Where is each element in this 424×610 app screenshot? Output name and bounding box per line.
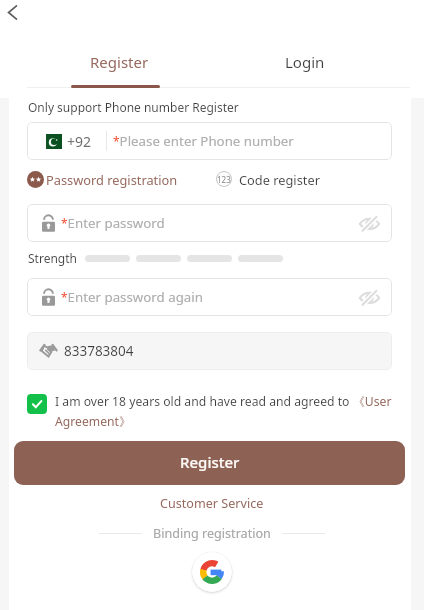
button[interactable]: Back [0, 0, 24, 25]
staticText: +92 [67, 132, 92, 151]
staticText: Binding registration [153, 525, 271, 542]
button[interactable]: Agree to user agreement [27, 394, 47, 414]
staticText: Login [285, 52, 325, 72]
staticText: Strength [28, 250, 77, 266]
button[interactable]: Show password [357, 211, 381, 235]
button[interactable]: I am over 18 years old and have read and… [55, 393, 395, 430]
button[interactable]: +92 [27, 122, 392, 160]
staticText: Register [180, 452, 240, 472]
button[interactable]: Register [14, 441, 405, 485]
button[interactable]: *Enter password [27, 204, 392, 242]
staticText: Code register [239, 171, 320, 188]
staticText: *Please enter Phone number [113, 132, 294, 150]
staticText: Only support Phone number Register [28, 99, 239, 115]
staticText: Password registration [46, 171, 178, 188]
staticText: Register [90, 52, 149, 72]
staticText: *Enter password again [61, 288, 203, 306]
button[interactable]: Login [216, 46, 393, 89]
button[interactable]: 833783804 [27, 332, 392, 370]
button[interactable]: Password registration [27, 170, 178, 188]
button[interactable]: *Enter password again [27, 278, 392, 316]
button[interactable]: Sign in with Google [192, 552, 232, 592]
button[interactable]: Register [31, 46, 208, 89]
button[interactable]: 123 [216, 170, 320, 188]
button[interactable]: Show password [357, 285, 381, 309]
staticText: *Enter password [61, 214, 165, 232]
staticText: 833783804 [64, 342, 134, 360]
staticText: 123 [217, 174, 231, 185]
button[interactable]: Customer Service [160, 495, 264, 512]
